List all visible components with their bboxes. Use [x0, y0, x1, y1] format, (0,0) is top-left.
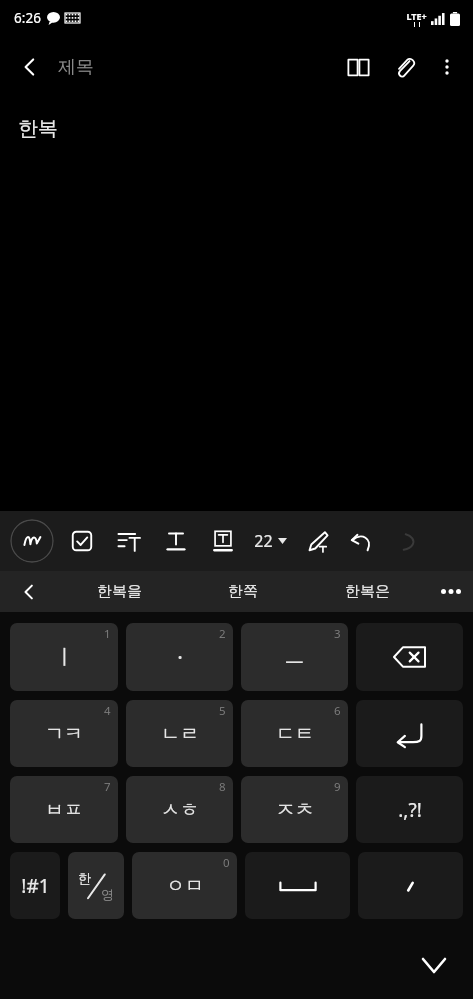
staticText: LTE+	[406, 10, 427, 22]
button[interactable]: Checklist	[67, 526, 97, 556]
staticText: 한	[78, 870, 91, 886]
button[interactable]: Hide keyboard	[413, 944, 455, 986]
button[interactable]: Comma	[358, 852, 463, 919]
staticText: 22	[254, 530, 273, 552]
button[interactable]: ㅅㅎ	[126, 776, 233, 843]
staticText: ㄷㅌ	[276, 722, 314, 746]
button[interactable]: 한복을	[58, 571, 181, 612]
staticText: 제목	[58, 56, 94, 79]
staticText: ·	[177, 643, 183, 672]
button[interactable]: ㄱㅋ	[10, 700, 118, 767]
button[interactable]: Highlight text	[302, 526, 332, 556]
staticText: 0	[223, 855, 230, 871]
button[interactable]: Reading mode	[335, 44, 381, 90]
staticText: 8	[219, 779, 226, 795]
staticText: 5	[219, 703, 226, 719]
staticText: 6	[334, 703, 341, 719]
staticText: 한복을	[97, 582, 142, 601]
button[interactable]: 한복	[0, 98, 473, 511]
staticText: 한복	[18, 116, 58, 141]
button[interactable]: ㅇㅁ	[132, 852, 237, 919]
staticText: ㄱㅋ	[45, 722, 83, 746]
staticText: 1	[104, 626, 111, 642]
button[interactable]: More suggestions	[429, 571, 473, 612]
button[interactable]: ㅈㅊ	[241, 776, 348, 843]
button[interactable]: Redo	[390, 528, 416, 554]
staticText: ㅣ	[54, 644, 75, 670]
button[interactable]: ㄴㄹ	[126, 700, 233, 767]
button[interactable]: ·	[126, 623, 233, 691]
button[interactable]: Space	[245, 852, 350, 919]
staticText: 영	[101, 886, 114, 902]
button[interactable]: Previous suggestions	[0, 571, 58, 612]
staticText: ㅈㅊ	[276, 798, 314, 822]
button[interactable]: 한쪽	[181, 571, 305, 612]
button[interactable]: ㅡ	[241, 623, 348, 691]
button[interactable]: Delete	[356, 623, 463, 691]
staticText: ㅂㅍ	[45, 798, 83, 822]
staticText: ㅇㅁ	[166, 874, 204, 898]
button[interactable]: Paragraph style	[114, 526, 144, 556]
button[interactable]: More options	[427, 47, 467, 87]
staticText: ㅡ	[284, 644, 305, 670]
button[interactable]: Enter	[356, 700, 463, 767]
staticText: 2	[219, 626, 226, 642]
button[interactable]: 한복은	[305, 571, 429, 612]
button[interactable]: 22	[250, 522, 291, 560]
button[interactable]: !#1	[10, 852, 60, 919]
staticText: !#1	[21, 873, 50, 899]
button[interactable]: Korean English toggle	[68, 852, 124, 919]
staticText: 4	[104, 703, 111, 719]
button[interactable]: .,?!	[356, 776, 463, 843]
button[interactable]: Undo	[346, 526, 376, 556]
button[interactable]: ㅂㅍ	[10, 776, 118, 843]
button[interactable]: Attach	[381, 44, 427, 90]
button[interactable]: ㄷㅌ	[241, 700, 348, 767]
staticText: .,?!	[398, 797, 422, 823]
staticText: 6:26	[14, 9, 41, 27]
staticText: 한쪽	[228, 582, 258, 601]
staticText: 한복은	[345, 582, 390, 601]
button[interactable]: Text format	[161, 526, 191, 556]
staticText: 7	[104, 779, 111, 795]
staticText: 9	[334, 779, 341, 795]
button[interactable]: Text box	[208, 526, 238, 556]
button[interactable]: Back	[8, 45, 52, 89]
button[interactable]: ㅣ	[10, 623, 118, 691]
button[interactable]: Handwriting	[10, 519, 54, 563]
staticText: ㅅㅎ	[161, 798, 199, 822]
staticText: ㄴㄹ	[161, 722, 199, 746]
staticText: 3	[334, 626, 341, 642]
